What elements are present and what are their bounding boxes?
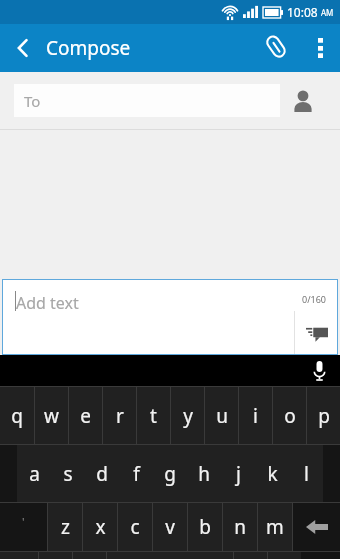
button[interactable]: d — [85, 445, 119, 502]
staticText: l — [304, 461, 309, 487]
staticText: o — [284, 403, 296, 429]
staticText: q — [11, 403, 23, 429]
button[interactable]: f — [119, 445, 153, 502]
button[interactable]: Backspace — [293, 503, 340, 551]
button[interactable]: Back — [0, 24, 46, 72]
staticText: Compose — [46, 35, 131, 61]
button[interactable]: Send — [295, 311, 338, 355]
button[interactable]: i — [239, 387, 272, 444]
staticText: r — [116, 403, 124, 429]
button[interactable]: Attach — [254, 24, 300, 72]
button[interactable]: c — [118, 503, 152, 551]
staticText: z — [61, 514, 70, 540]
staticText: 0/160 — [302, 293, 326, 305]
staticText: d — [96, 461, 108, 487]
staticText: c — [130, 514, 140, 540]
staticText: g — [164, 461, 176, 487]
staticText: ' — [22, 514, 25, 529]
staticText: s — [63, 461, 73, 487]
staticText: h — [198, 461, 210, 487]
button[interactable]: To — [14, 84, 280, 117]
button[interactable]: y — [171, 387, 204, 444]
staticText: k — [267, 461, 278, 487]
staticText: n — [234, 514, 246, 540]
staticText: u — [216, 403, 228, 429]
button[interactable]: l — [289, 445, 323, 502]
button[interactable]: t — [137, 387, 170, 444]
button[interactable]: e — [69, 387, 102, 444]
button[interactable]: r — [103, 387, 136, 444]
button[interactable]: p — [307, 387, 340, 444]
button[interactable]: x — [83, 503, 117, 551]
staticText: i — [253, 403, 258, 429]
button[interactable]: z — [48, 503, 82, 551]
button[interactable]: a — [17, 445, 51, 502]
staticText: Add text — [16, 292, 79, 314]
button[interactable]: h — [187, 445, 221, 502]
staticText: AM — [321, 7, 334, 18]
button[interactable]: b — [188, 503, 222, 551]
button[interactable]: k — [255, 445, 289, 502]
staticText: f — [133, 461, 140, 487]
button[interactable]: s — [51, 445, 85, 502]
staticText: x — [95, 514, 106, 540]
button[interactable]: Add text — [2, 279, 338, 355]
staticText: j — [236, 461, 241, 487]
button[interactable]: Pick contact — [280, 72, 326, 129]
staticText: To — [24, 91, 41, 111]
button[interactable]: w — [35, 387, 68, 444]
staticText: 10:08 — [287, 4, 318, 20]
button[interactable]: q — [0, 387, 34, 444]
button[interactable]: g — [153, 445, 187, 502]
button[interactable]: o — [273, 387, 306, 444]
button[interactable]: v — [153, 503, 187, 551]
button[interactable]: Voice input — [298, 355, 340, 386]
button[interactable]: n — [223, 503, 257, 551]
button[interactable]: j — [221, 445, 255, 502]
staticText: t — [150, 403, 157, 429]
staticText: b — [199, 514, 211, 540]
button[interactable]: Shift — [0, 503, 47, 551]
button[interactable]: More options — [300, 24, 340, 72]
staticText: w — [44, 403, 59, 429]
button[interactable]: m — [258, 503, 292, 551]
staticText: v — [165, 514, 175, 540]
staticText: a — [29, 461, 40, 487]
staticText: p — [318, 403, 330, 429]
staticText: y — [183, 403, 193, 429]
staticText: e — [80, 403, 91, 429]
staticText: m — [266, 514, 284, 540]
button[interactable]: u — [205, 387, 238, 444]
